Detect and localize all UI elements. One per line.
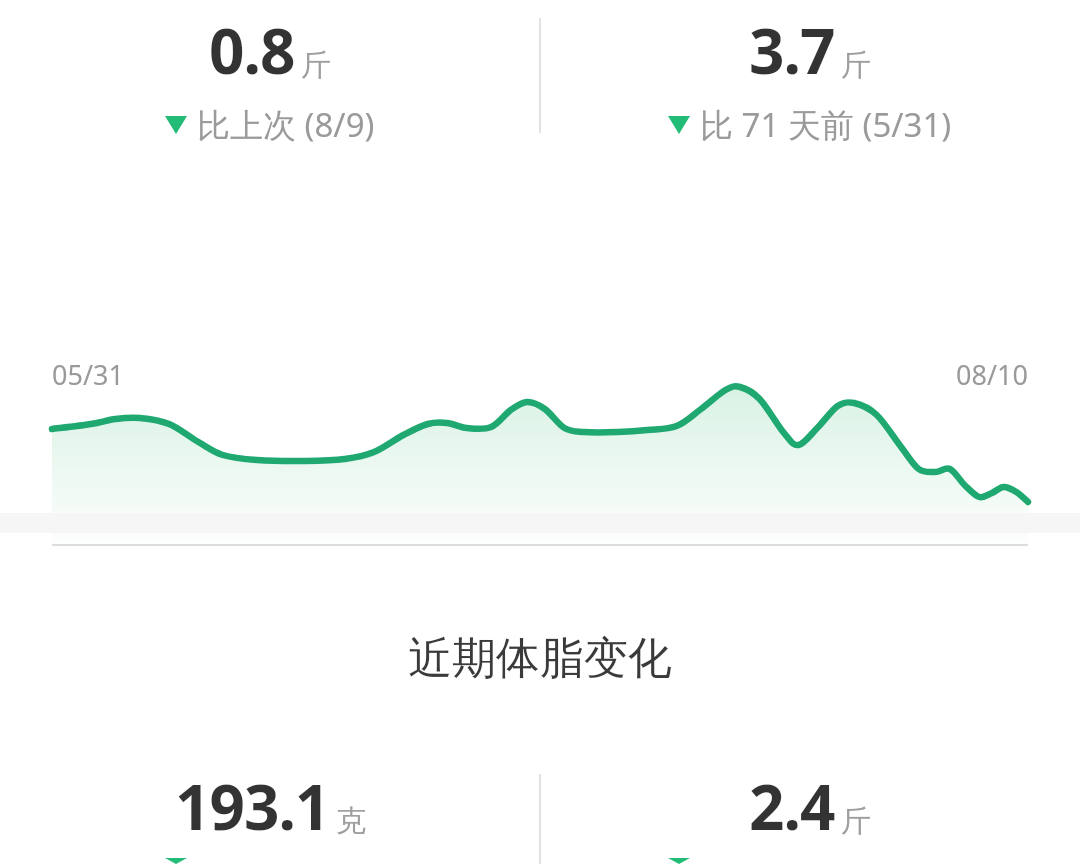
staticText: 斤: [301, 46, 331, 84]
staticText: 斤: [841, 802, 871, 840]
staticText: 比 71 天前 (5/31): [700, 102, 952, 147]
staticText: 0.8: [209, 8, 295, 92]
staticText: 2.4: [749, 764, 835, 848]
staticText: 克: [336, 802, 366, 840]
button[interactable]: 3.7: [668, 8, 952, 147]
staticText: 08/10: [956, 356, 1028, 393]
staticText: 比上次 (8/9): [197, 102, 375, 147]
staticText: 近期体脂变化: [0, 631, 1080, 686]
button[interactable]: 193.1: [165, 764, 375, 864]
button[interactable]: 0.8: [165, 8, 375, 147]
staticText: 193.1: [175, 764, 330, 848]
staticText: 3.7: [749, 8, 835, 92]
staticText: 05/31: [52, 356, 124, 393]
staticText: 斤: [841, 46, 871, 84]
button[interactable]: 2.4: [668, 764, 952, 864]
